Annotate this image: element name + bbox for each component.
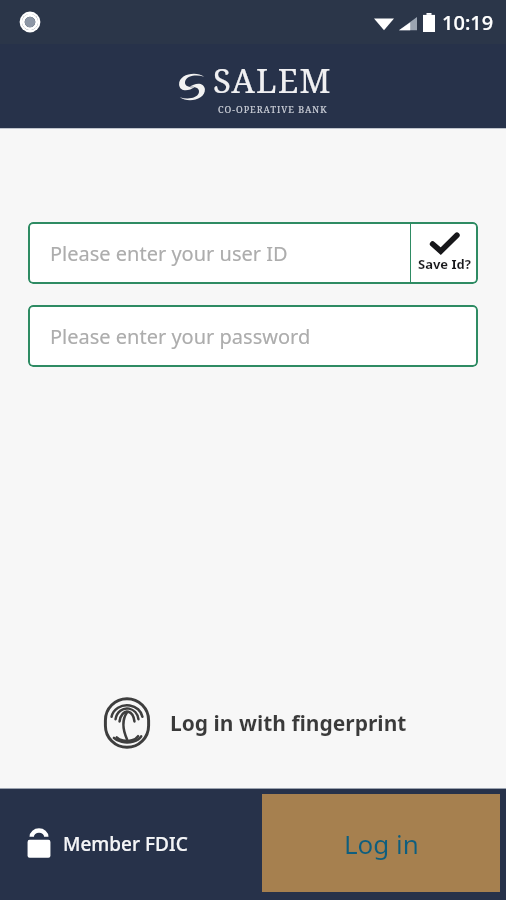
staticText: Member FDIC: [63, 831, 188, 857]
staticText: SALEM: [213, 58, 332, 103]
button[interactable]: Please enter your password: [28, 305, 478, 367]
button[interactable]: Log in with fingerprint: [0, 690, 506, 756]
button[interactable]: Please enter your user ID: [28, 222, 410, 284]
staticText: Please enter your password: [50, 323, 311, 350]
staticText: CO-OPERATIVE BANK: [218, 103, 328, 115]
button[interactable]: Save Id: [411, 222, 478, 284]
button[interactable]: Log in: [262, 794, 500, 892]
staticText: 10:19: [442, 9, 494, 36]
staticText: Log in: [344, 826, 419, 861]
staticText: Save Id?: [418, 255, 471, 273]
staticText: Log in with fingerprint: [170, 709, 407, 738]
staticText: Please enter your user ID: [50, 240, 288, 267]
button[interactable]: Member FDIC: [0, 788, 262, 900]
